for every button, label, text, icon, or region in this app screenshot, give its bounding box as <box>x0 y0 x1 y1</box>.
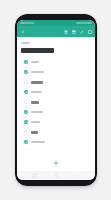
button[interactable]: Recents <box>30 171 39 180</box>
button[interactable] <box>21 58 91 66</box>
button[interactable] <box>21 78 91 86</box>
button[interactable] <box>21 68 91 76</box>
button[interactable] <box>21 118 91 126</box>
button[interactable] <box>21 128 91 136</box>
button[interactable]: Add item <box>51 158 61 168</box>
button[interactable]: Delete <box>62 28 70 36</box>
button[interactable] <box>21 98 91 106</box>
button[interactable]: More options <box>86 28 94 36</box>
button[interactable]: Edit <box>78 28 86 36</box>
button[interactable] <box>21 138 91 146</box>
button[interactable] <box>21 108 91 116</box>
button[interactable]: Home <box>52 171 61 180</box>
button[interactable] <box>21 88 91 96</box>
button[interactable]: Archive <box>70 28 78 36</box>
button[interactable]: Back <box>19 28 27 36</box>
